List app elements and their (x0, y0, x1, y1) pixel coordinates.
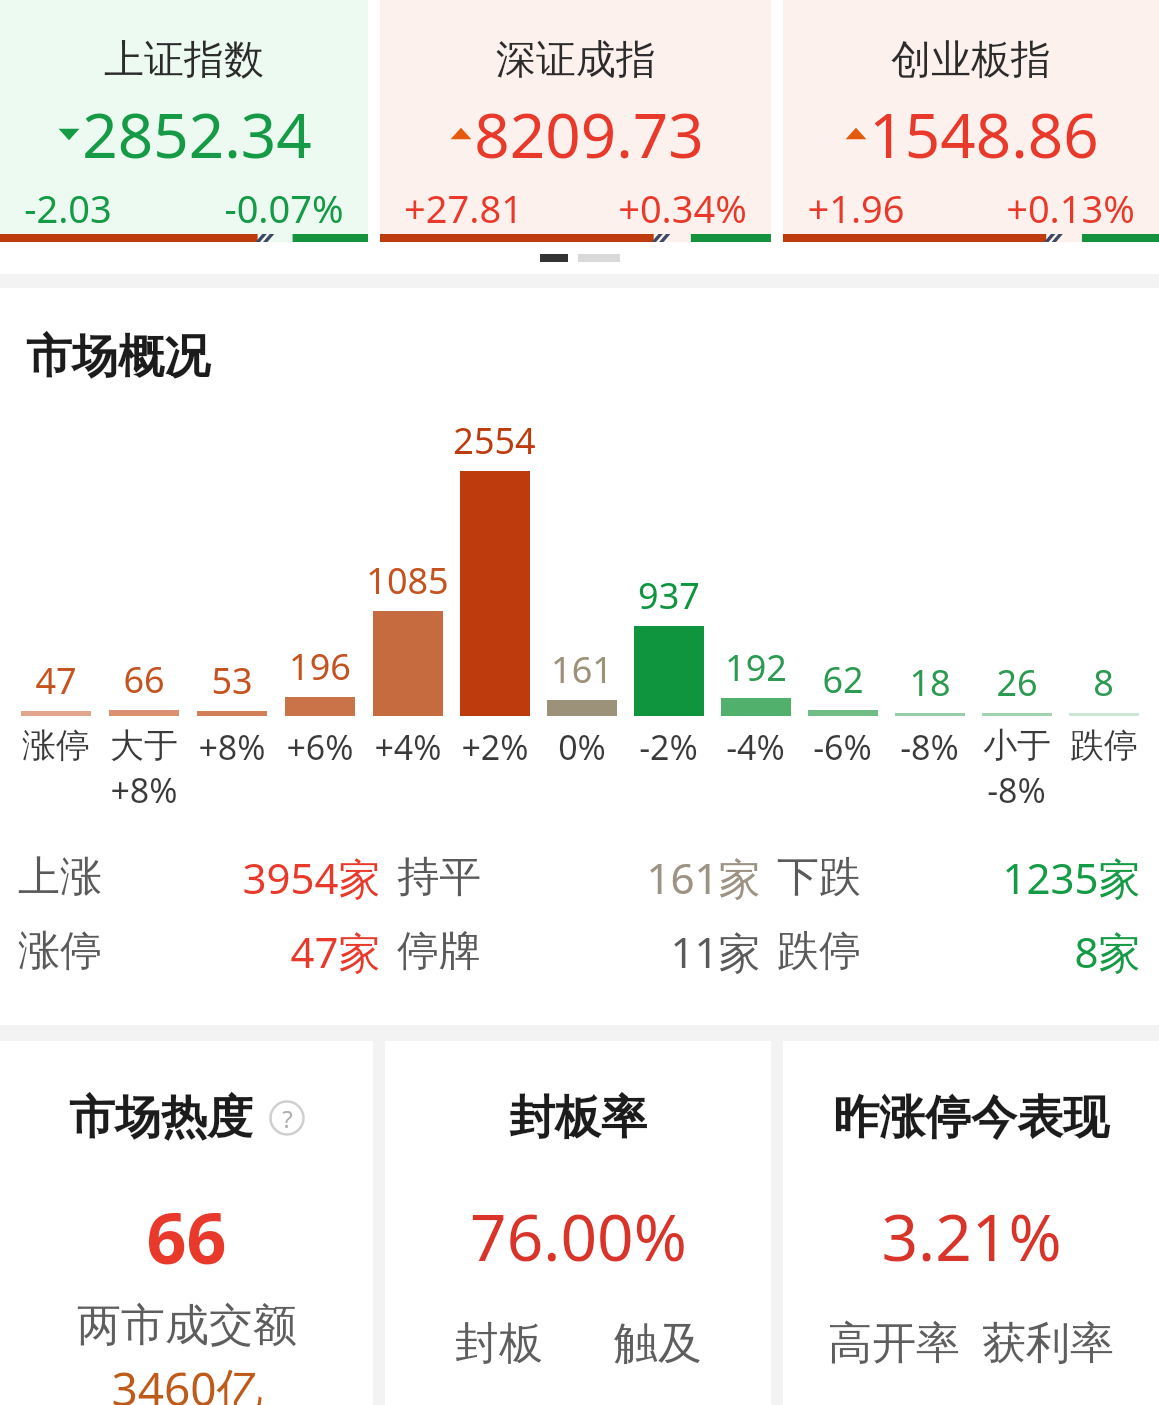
staticText: +6% (286, 724, 354, 770)
staticText: 涨停 (18, 925, 102, 978)
staticText: 62 (822, 655, 864, 704)
staticText: 47家 (290, 923, 381, 979)
staticText: -4% (726, 724, 785, 770)
staticText: +0.13% (1006, 182, 1135, 234)
staticText: -8% (900, 724, 959, 770)
staticText: 1548.86 (869, 92, 1099, 176)
staticText: -8% (987, 767, 1046, 813)
staticText: 18 (909, 658, 951, 707)
button[interactable]: 161 (538, 645, 625, 716)
staticText: 大于 (110, 724, 178, 767)
staticText: 3460亿 (111, 1357, 263, 1405)
button[interactable]: 下跌 (769, 849, 1149, 905)
staticText: +8% (198, 724, 266, 770)
staticText: 创业板指 (891, 34, 1051, 84)
staticText: 上证指数 (104, 34, 264, 84)
staticText: 小于 (983, 724, 1051, 767)
button[interactable]: 市场热度 (0, 1041, 373, 1405)
staticText: 8209.73 (474, 92, 704, 176)
staticText: 8 (1093, 658, 1114, 707)
button[interactable]: 上证指数 (0, 0, 368, 242)
staticText: 市场概况 (26, 328, 210, 386)
staticText: 2852.34 (82, 92, 312, 176)
button[interactable]: 2554 (451, 416, 538, 716)
staticText: 161 (551, 645, 613, 694)
button[interactable]: 1085 (364, 556, 451, 716)
staticText: 市场热度 (69, 1089, 253, 1147)
staticText: 161家 (646, 849, 761, 905)
staticText: ? (282, 1102, 293, 1135)
button[interactable]: 192 (712, 643, 799, 716)
staticText: 66 (146, 1189, 227, 1284)
staticText: 0% (558, 724, 606, 770)
staticText: 26 (996, 658, 1038, 707)
staticText: 11家 (670, 923, 761, 979)
staticText: 2554 (453, 416, 536, 465)
staticText: 持平 (397, 851, 481, 904)
staticText: +27.81 (404, 182, 523, 234)
button[interactable]: 62 (799, 655, 886, 716)
staticText: 高开率 (828, 1316, 960, 1371)
button[interactable]: 26 (973, 658, 1060, 716)
staticText: +4% (374, 724, 442, 770)
button[interactable]: 市场热度说明 (269, 1100, 305, 1136)
button[interactable]: 66 (100, 655, 188, 716)
staticText: 76.00% (470, 1193, 687, 1280)
button[interactable]: 昨涨停今表现 (783, 1041, 1159, 1405)
button[interactable]: 跌停 (769, 923, 1149, 979)
button[interactable]: 53 (188, 656, 276, 716)
staticText: 3954家 (242, 849, 381, 905)
staticText: +1.96 (807, 182, 905, 234)
button[interactable]: 上涨 (10, 849, 389, 905)
button[interactable]: 18 (886, 658, 973, 716)
staticText: 66 (123, 655, 165, 704)
staticText: 触及 (614, 1316, 702, 1371)
staticText: 1235家 (1002, 849, 1141, 905)
staticText: 196 (289, 642, 351, 691)
staticText: 停牌 (397, 925, 481, 978)
button[interactable]: 创业板指 (783, 0, 1159, 242)
staticText: -2.03 (24, 182, 112, 234)
staticText: 两市成交额 (77, 1298, 297, 1353)
staticText: 封板 (455, 1316, 543, 1371)
staticText: 涨停 (22, 724, 90, 767)
staticText: 上涨 (18, 851, 102, 904)
button[interactable]: 8 (1060, 658, 1147, 716)
staticText: 下跌 (777, 851, 861, 904)
staticText: 47 (35, 656, 77, 705)
staticText: 深证成指 (496, 34, 656, 84)
button[interactable]: 持平 (389, 849, 769, 905)
staticText: 跌停 (1070, 724, 1138, 767)
button[interactable]: 937 (625, 571, 712, 716)
staticText: 3.21% (881, 1193, 1062, 1280)
staticText: 获利率 (982, 1316, 1114, 1371)
staticText: 192 (725, 643, 787, 692)
staticText: -0.07% (224, 182, 344, 234)
staticText: 8家 (1074, 923, 1141, 979)
staticText: 937 (638, 571, 700, 620)
staticText: +8% (110, 767, 178, 813)
button[interactable]: 停牌 (389, 923, 769, 979)
staticText: +2% (461, 724, 529, 770)
button[interactable]: 封板率 (385, 1041, 771, 1405)
staticText: 1085 (366, 556, 449, 605)
staticText: 昨涨停今表现 (833, 1089, 1109, 1147)
staticText: -6% (813, 724, 872, 770)
button[interactable]: 47 (12, 656, 100, 716)
staticText: 53 (211, 656, 253, 705)
staticText: -2% (639, 724, 698, 770)
staticText: +0.34% (618, 182, 747, 234)
button[interactable]: 深证成指 (380, 0, 771, 242)
button[interactable]: 196 (276, 642, 364, 716)
staticText: 跌停 (777, 925, 861, 978)
staticText: 封板率 (509, 1089, 647, 1147)
button[interactable]: 涨停 (10, 923, 389, 979)
